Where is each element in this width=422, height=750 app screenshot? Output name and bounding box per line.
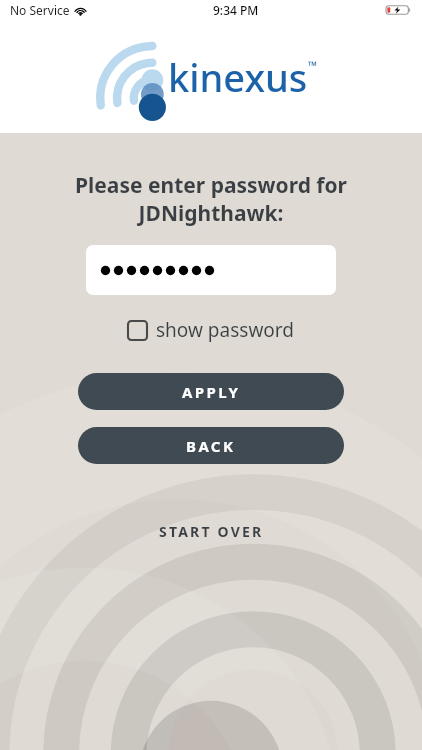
staticText: START OVER: [159, 522, 264, 541]
staticText: No Service: [10, 2, 70, 18]
button[interactable]: START OVER: [147, 516, 276, 547]
button[interactable]: Password: [86, 245, 336, 295]
staticText: show password: [156, 317, 294, 343]
staticText: kinexus: [168, 51, 308, 103]
button[interactable]: BACK: [78, 427, 344, 464]
button[interactable]: APPLY: [78, 373, 344, 410]
staticText: 9:34 PM: [213, 2, 259, 18]
staticText: BACK: [186, 436, 236, 456]
button[interactable]: show password: [122, 313, 300, 347]
staticText: ™: [308, 57, 318, 73]
staticText: APPLY: [182, 382, 241, 402]
staticText: Please enter password for JDNighthawk:: [0, 171, 422, 227]
